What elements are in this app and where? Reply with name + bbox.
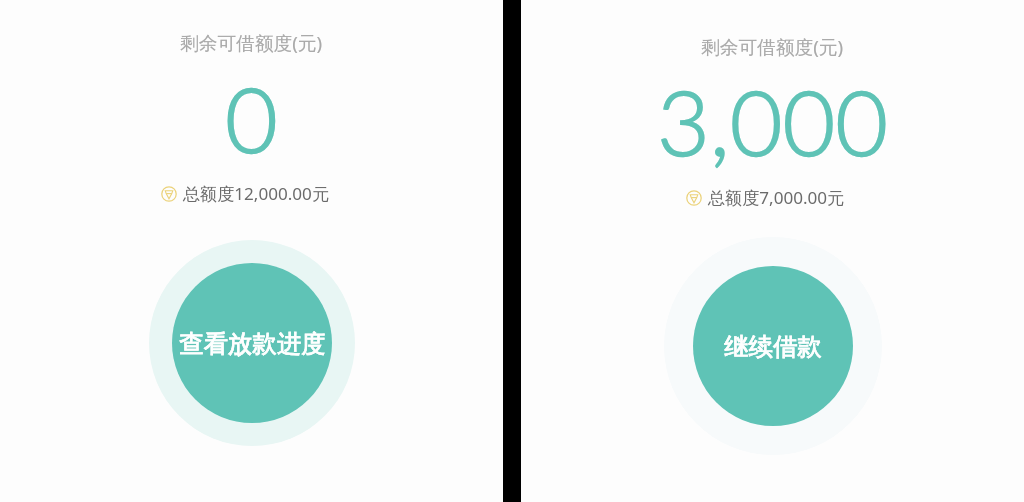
staticText: 总额度7,000.00元 — [708, 186, 845, 209]
other: Total credit limit — [686, 190, 702, 206]
staticText: 查看放款进度 — [179, 329, 326, 360]
staticText: 继续借款 — [724, 332, 822, 363]
button[interactable]: 查看放款进度 — [172, 263, 332, 423]
staticText: 总额度12,000.00元 — [183, 182, 329, 205]
button[interactable]: 继续借款 — [693, 266, 853, 426]
other: Total credit limit — [161, 186, 177, 202]
staticText: 剩余可借额度(元) — [701, 34, 844, 60]
staticText: 0 — [225, 63, 278, 172]
staticText: 剩余可借额度(元) — [180, 30, 323, 56]
staticText: 3,000 — [657, 66, 889, 175]
